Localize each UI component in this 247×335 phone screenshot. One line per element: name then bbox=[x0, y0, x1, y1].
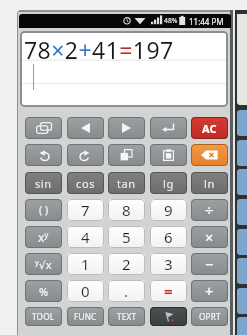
button[interactable] bbox=[150, 117, 187, 139]
button[interactable]: 0 bbox=[67, 280, 104, 302]
staticText: ( ) bbox=[39, 203, 49, 217]
staticText: 4 bbox=[81, 227, 90, 247]
button[interactable] bbox=[108, 117, 145, 139]
button[interactable]: 5 bbox=[108, 226, 145, 248]
button[interactable]: tan bbox=[108, 172, 145, 194]
staticText: AC bbox=[202, 121, 217, 136]
button[interactable]: 9 bbox=[150, 199, 187, 221]
button[interactable] bbox=[191, 144, 228, 166]
button[interactable]: lg bbox=[150, 172, 187, 194]
button[interactable]: TOOL bbox=[25, 307, 62, 326]
button[interactable] bbox=[25, 144, 62, 166]
staticText: ÷ bbox=[205, 200, 214, 220]
staticText: 8 bbox=[122, 200, 131, 220]
staticText: TEXT bbox=[117, 311, 137, 322]
button[interactable] bbox=[25, 117, 62, 139]
button[interactable] bbox=[108, 144, 145, 166]
button[interactable]: . bbox=[108, 280, 145, 302]
button[interactable]: × bbox=[191, 226, 228, 248]
button[interactable]: ln bbox=[191, 172, 228, 194]
button[interactable]: OPRT bbox=[191, 307, 228, 326]
staticText: tan bbox=[117, 176, 136, 191]
staticText: OPRT bbox=[199, 311, 221, 322]
button[interactable]: sin bbox=[25, 172, 62, 194]
button[interactable]: y√x bbox=[25, 253, 62, 275]
button[interactable]: + bbox=[191, 280, 228, 302]
staticText: 48% bbox=[164, 16, 178, 25]
staticText: % bbox=[39, 284, 49, 299]
staticText: y√x bbox=[35, 257, 52, 272]
button[interactable] bbox=[67, 117, 104, 139]
button[interactable]: − bbox=[191, 253, 228, 275]
staticText: 7 bbox=[81, 200, 90, 220]
button[interactable]: 4 bbox=[67, 226, 104, 248]
staticText: . bbox=[124, 281, 129, 301]
button[interactable] bbox=[150, 144, 187, 166]
staticText: lg bbox=[163, 176, 174, 191]
button[interactable] bbox=[150, 307, 187, 326]
staticText: cos bbox=[76, 176, 96, 191]
button[interactable]: xy bbox=[25, 226, 62, 248]
button[interactable]: 1 bbox=[67, 253, 104, 275]
staticText: 2 bbox=[122, 254, 131, 274]
staticText: − bbox=[205, 254, 214, 274]
button[interactable]: 3 bbox=[150, 253, 187, 275]
staticText: 5 bbox=[122, 227, 131, 247]
staticText: 3 bbox=[164, 254, 173, 274]
staticText: TOOL bbox=[32, 311, 55, 322]
button[interactable]: cos bbox=[67, 172, 104, 194]
staticText: = bbox=[164, 281, 173, 301]
button[interactable]: ÷ bbox=[191, 199, 228, 221]
staticText: 0 bbox=[81, 281, 90, 301]
button[interactable] bbox=[67, 144, 104, 166]
staticText: sin bbox=[35, 176, 52, 191]
staticText: 11:44 PM bbox=[189, 16, 224, 27]
button[interactable]: 2 bbox=[108, 253, 145, 275]
button[interactable]: TEXT bbox=[108, 307, 145, 326]
button[interactable]: 6 bbox=[150, 226, 187, 248]
staticText: 9 bbox=[164, 200, 173, 220]
staticText: FUNC bbox=[74, 311, 97, 322]
staticText: + bbox=[205, 281, 214, 301]
staticText: × bbox=[205, 227, 214, 247]
staticText: xy bbox=[38, 229, 49, 245]
button[interactable]: 7 bbox=[67, 199, 104, 221]
staticText: 1 bbox=[81, 254, 90, 274]
button[interactable]: % bbox=[25, 280, 62, 302]
button[interactable]: AC bbox=[191, 117, 228, 139]
button[interactable]: 8 bbox=[108, 199, 145, 221]
button[interactable]: = bbox=[150, 280, 187, 302]
staticText: 6 bbox=[164, 227, 173, 247]
staticText: ln bbox=[204, 176, 215, 191]
button[interactable]: ( ) bbox=[25, 199, 62, 221]
button[interactable]: FUNC bbox=[67, 307, 104, 326]
staticText: 78×2+41=197 bbox=[24, 34, 174, 65]
